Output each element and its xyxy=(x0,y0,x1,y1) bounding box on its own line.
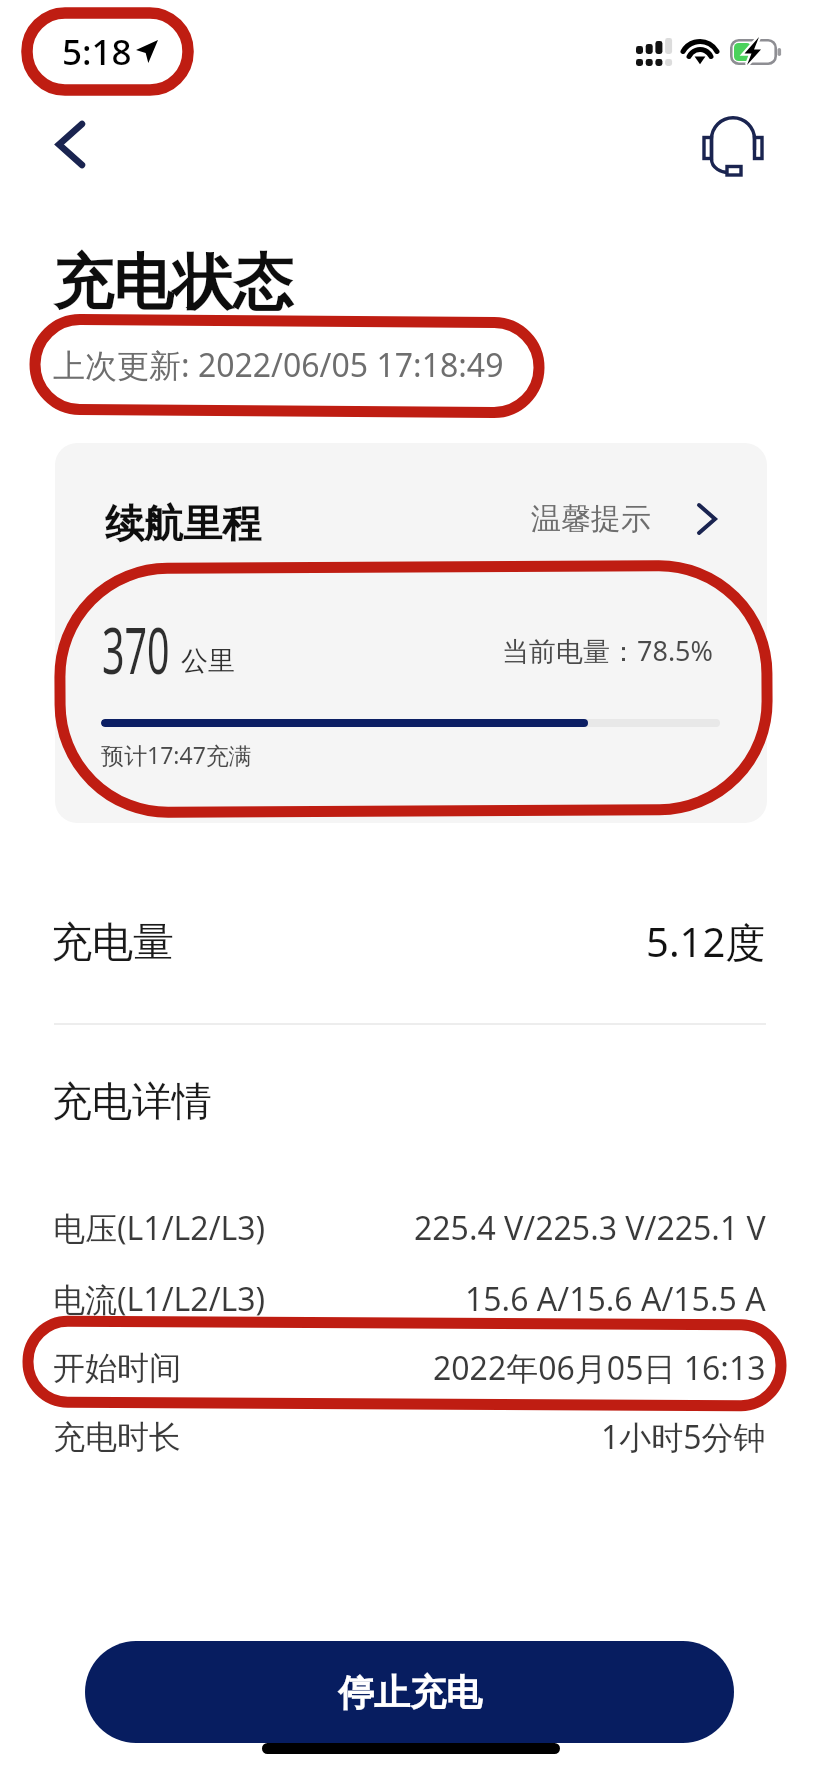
staticText: 5.12度 xyxy=(646,914,766,969)
staticText: 开始时间 xyxy=(53,1348,181,1388)
button[interactable]: 续航里程 xyxy=(55,443,767,823)
staticText: 预计17:47充满 xyxy=(101,739,252,770)
staticText: 1小时5分钟 xyxy=(601,1415,766,1459)
staticText: 充电详情 xyxy=(52,1076,212,1126)
staticText: 公里 xyxy=(181,644,235,678)
staticText: 电压(L1/L2/L3) xyxy=(53,1206,266,1250)
staticText: 充电量 xyxy=(51,917,174,969)
button[interactable]: Back xyxy=(22,96,118,192)
staticText: 当前电量：78.5% xyxy=(502,632,714,669)
staticText: 续航里程 xyxy=(105,499,261,548)
staticText: 充电状态 xyxy=(53,245,293,321)
staticText: 370 xyxy=(102,606,170,693)
button[interactable]: 停止充电 xyxy=(85,1641,734,1743)
staticText: 15.6 A/15.6 A/15.5 A xyxy=(465,1277,766,1321)
staticText: 停止充电 xyxy=(338,1670,482,1715)
staticText: 电流(L1/L2/L3) xyxy=(53,1277,266,1321)
staticText: 225.4 V/225.3 V/225.1 V xyxy=(414,1206,766,1250)
staticText: 5:18 xyxy=(62,28,132,76)
staticText: 2022年06月05日 16:13 xyxy=(433,1346,766,1390)
staticText: 上次更新: 2022/06/05 17:18:49 xyxy=(53,343,504,387)
staticText: 温馨提示 xyxy=(531,500,651,538)
button[interactable]: 温馨提示 xyxy=(521,486,727,552)
staticText: 充电时长 xyxy=(53,1417,181,1457)
button[interactable]: Customer service xyxy=(674,88,790,204)
